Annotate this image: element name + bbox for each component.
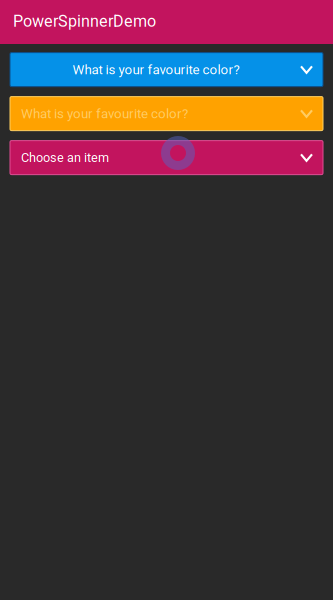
staticText: PowerSpinnerDemo bbox=[13, 12, 156, 31]
button[interactable]: What is your favourite color? bbox=[10, 53, 323, 87]
button[interactable]: What is your favourite color? bbox=[10, 97, 323, 131]
staticText: What is your favourite color? bbox=[21, 106, 188, 121]
button[interactable]: Choose an item bbox=[10, 141, 323, 175]
staticText: Choose an item bbox=[21, 150, 109, 165]
staticText: What is your favourite color? bbox=[72, 62, 239, 77]
